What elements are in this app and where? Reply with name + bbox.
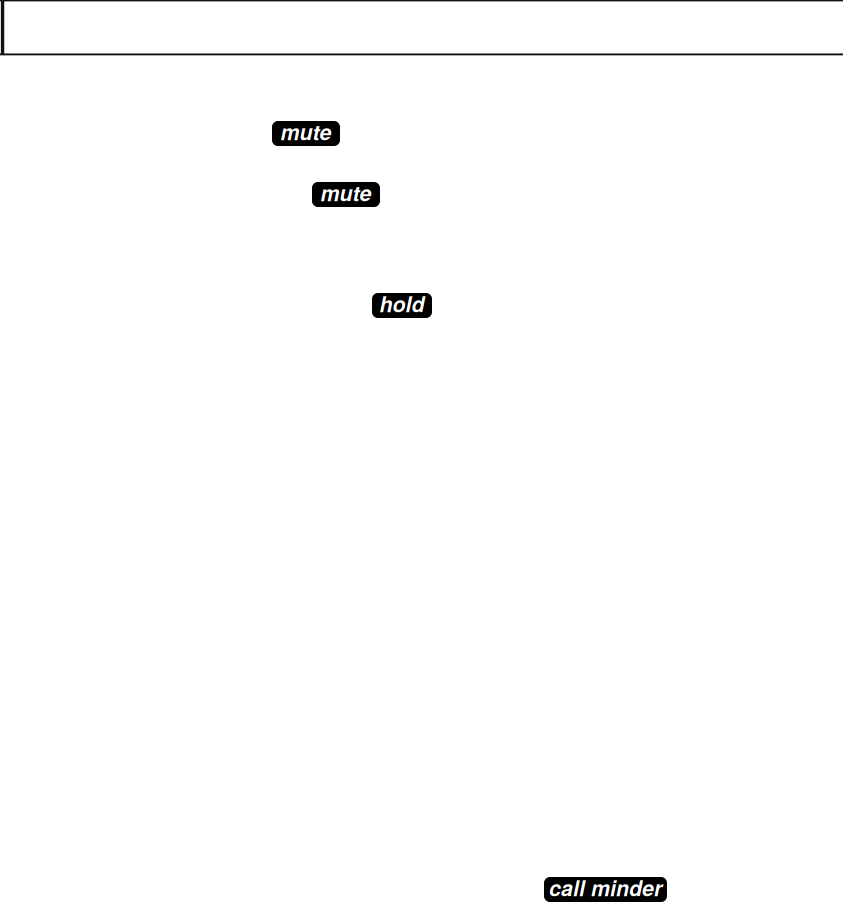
button[interactable]: mute	[272, 121, 340, 146]
staticText: hold	[379, 288, 424, 319]
staticText: mute	[280, 116, 331, 147]
button[interactable]: call minder	[544, 877, 667, 902]
button[interactable]: hold	[372, 293, 432, 318]
staticText: mute	[320, 177, 371, 208]
button[interactable]: mute	[312, 182, 380, 207]
staticText: call minder	[549, 872, 662, 903]
